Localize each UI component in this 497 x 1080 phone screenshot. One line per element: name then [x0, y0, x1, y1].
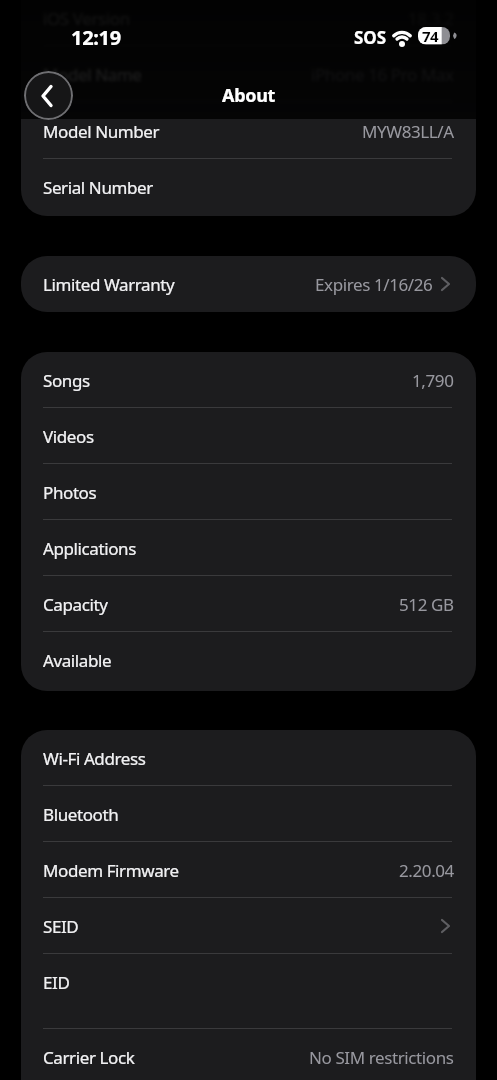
- button[interactable]: Wi-Fi Address: [21, 730, 476, 786]
- button[interactable]: Applications: [21, 520, 476, 576]
- staticText: Applications: [43, 537, 136, 560]
- button[interactable]: Carrier Lock: [21, 1029, 476, 1080]
- staticText: Bluetooth: [43, 803, 119, 826]
- button[interactable]: Serial Number: [21, 159, 476, 215]
- staticText: Model Number: [43, 120, 160, 143]
- button[interactable]: Available: [21, 632, 476, 688]
- button[interactable]: Modem Firmware: [21, 842, 476, 898]
- staticText: 12:19: [71, 24, 121, 50]
- staticText: 2.20.04: [399, 859, 454, 882]
- staticText: Available: [43, 649, 112, 672]
- staticText: SEID: [43, 915, 79, 938]
- staticText: Photos: [43, 481, 97, 504]
- staticText: 512 GB: [399, 593, 454, 616]
- button[interactable]: [24, 71, 73, 120]
- button[interactable]: Model Number: [21, 119, 476, 159]
- staticText: Carrier Lock: [43, 1046, 135, 1069]
- button[interactable]: iOS Version: [21, 0, 476, 46]
- staticText: No SIM restrictions: [309, 1046, 454, 1069]
- staticText: Songs: [43, 369, 90, 392]
- button[interactable]: Songs: [21, 352, 476, 408]
- staticText: Modem Firmware: [43, 859, 179, 882]
- staticText: Model Name: [43, 63, 142, 86]
- staticText: About: [222, 83, 276, 108]
- staticText: Limited Warranty: [43, 273, 175, 296]
- staticText: 1,790: [412, 369, 454, 392]
- staticText: Capacity: [43, 593, 108, 616]
- button[interactable]: Model Name: [21, 46, 476, 102]
- button[interactable]: EID: [21, 954, 476, 1029]
- button[interactable]: Bluetooth: [21, 786, 476, 842]
- staticText: Serial Number: [43, 176, 153, 199]
- button[interactable]: Videos: [21, 408, 476, 464]
- staticText: MYW83LL/A: [362, 120, 454, 143]
- button[interactable]: SEID: [21, 898, 476, 954]
- staticText: Expires 1/16/26: [315, 273, 433, 296]
- staticText: SOS: [354, 26, 387, 49]
- button[interactable]: Capacity: [21, 576, 476, 632]
- staticText: 74: [422, 26, 439, 46]
- staticText: EID: [43, 971, 70, 994]
- button[interactable]: Photos: [21, 464, 476, 520]
- staticText: Videos: [43, 425, 94, 448]
- staticText: Wi-Fi Address: [43, 747, 146, 770]
- staticText: 18.3.2: [408, 7, 454, 30]
- button[interactable]: Limited Warranty: [21, 256, 476, 312]
